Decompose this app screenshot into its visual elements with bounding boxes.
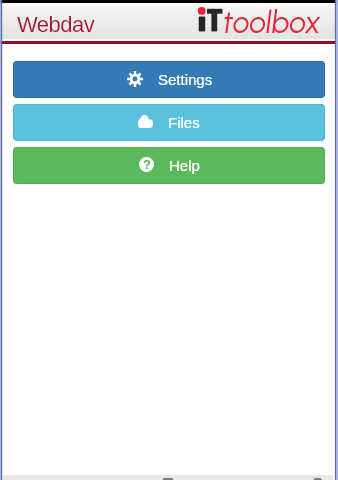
staticText: Files: [168, 114, 200, 131]
staticText: ?: [143, 157, 151, 172]
staticText: Settings: [158, 71, 213, 88]
staticText: toolbox: [223, 4, 322, 40]
button[interactable]: Files: [13, 104, 325, 141]
staticText: Help: [169, 157, 200, 174]
staticText: Webdav: [17, 12, 95, 37]
button[interactable]: Settings: [13, 61, 325, 98]
button[interactable]: ?: [13, 147, 325, 184]
